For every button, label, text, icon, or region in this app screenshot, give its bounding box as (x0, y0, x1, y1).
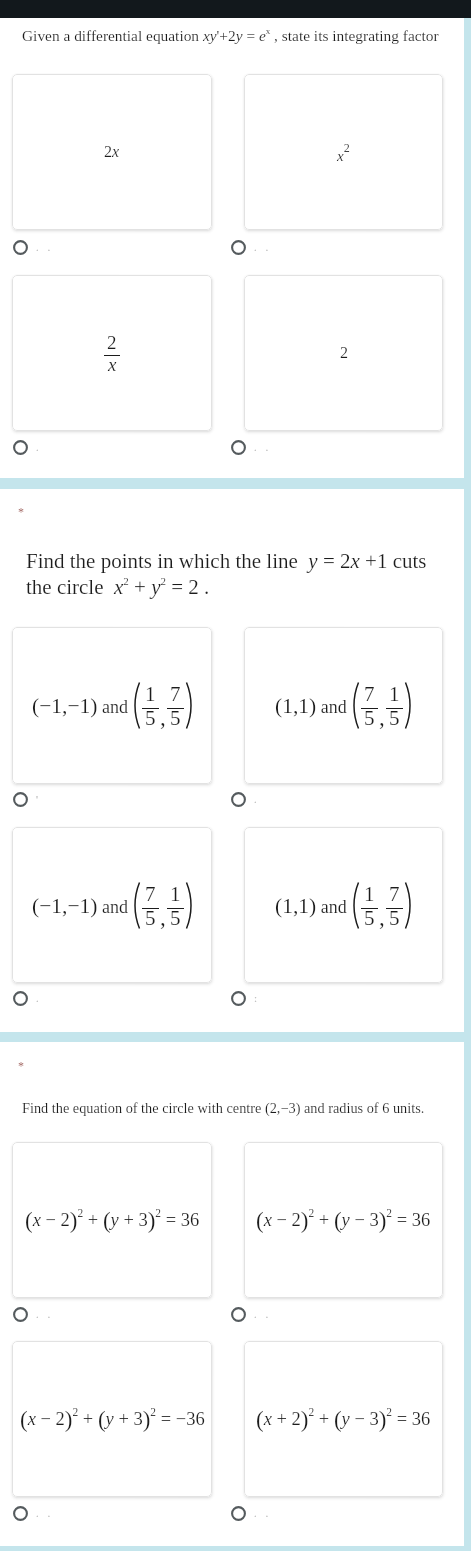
staticText: x (108, 354, 117, 375)
staticText: 1 (170, 882, 181, 905)
staticText: 5 (145, 706, 156, 729)
staticText: 5 (389, 706, 400, 729)
staticText: , (160, 704, 166, 730)
button[interactable]: (x − 2)2 + (y + 3)2 = −36 (12, 1341, 212, 1497)
staticText: . . (36, 1507, 54, 1519)
staticText: (−1,−1) and (32, 894, 133, 918)
staticText: Given a differential equation xy'+2y = e… (22, 26, 439, 44)
staticText: 7 (145, 882, 156, 905)
staticText: . . (254, 1507, 272, 1519)
button[interactable]: (x + 2)2 + (y − 3)2 = 36 (244, 1341, 443, 1497)
staticText: Find the points in which the line y = 2x… (26, 549, 427, 572)
staticText: 1 (364, 882, 375, 905)
button[interactable]: Select answer option (13, 1502, 123, 1524)
button[interactable]: (1,1) and (244, 627, 443, 784)
button[interactable]: Select answer option (231, 436, 341, 458)
staticText: (x + 2)2 + (y − 3)2 = 36 (256, 1406, 431, 1432)
staticText: . . (254, 241, 272, 253)
button[interactable]: x2 (244, 74, 443, 230)
staticText: 5 (389, 906, 400, 929)
button[interactable]: 2x (12, 74, 212, 230)
staticText: the circle x2 + y2 = 2 . (26, 575, 210, 598)
button[interactable]: (1,1) and (244, 827, 443, 983)
staticText: ' (36, 793, 41, 805)
staticText: . . (36, 241, 54, 253)
button[interactable]: Select answer option (13, 236, 123, 258)
staticText: , (379, 704, 385, 730)
staticText: 5 (145, 906, 156, 929)
staticText: : (254, 992, 261, 1004)
staticText: 1 (389, 682, 400, 705)
staticText: 1 (145, 682, 156, 705)
button[interactable]: Select answer option (13, 436, 123, 458)
staticText: 5 (170, 906, 181, 929)
staticText: . . (254, 441, 272, 453)
button[interactable]: (−1,−1) and (12, 827, 212, 983)
button[interactable]: (x − 2)2 + (y − 3)2 = 36 (244, 1142, 443, 1298)
staticText: . (36, 992, 42, 1004)
button[interactable]: Select answer option (231, 1303, 341, 1325)
staticText: 2 (107, 332, 117, 353)
button[interactable]: Select answer option (231, 987, 341, 1009)
staticText: (1,1) and (275, 694, 352, 718)
staticText: . . (254, 1308, 272, 1320)
staticText: * (18, 1059, 24, 1072)
staticText: 7 (389, 882, 400, 905)
button[interactable]: Select answer option (13, 987, 123, 1009)
staticText: . (36, 441, 42, 453)
staticText: (x − 2)2 + (y + 3)2 = −36 (20, 1406, 205, 1432)
staticText: x2 (337, 141, 350, 164)
staticText: 5 (170, 706, 181, 729)
staticText: 2 (340, 344, 348, 362)
button[interactable]: Select answer option (231, 788, 341, 810)
staticText: 5 (364, 706, 375, 729)
staticText: Find the equation of the circle with cen… (22, 1100, 425, 1116)
staticText: 7 (364, 682, 375, 705)
button[interactable]: (−1,−1) and (12, 627, 212, 784)
staticText: . (254, 793, 260, 805)
staticText: , (379, 904, 385, 930)
button[interactable]: 2 (244, 275, 443, 431)
staticText: (1,1) and (275, 894, 352, 918)
staticText: 7 (170, 682, 181, 705)
staticText: (x − 2)2 + (y − 3)2 = 36 (256, 1207, 431, 1233)
staticText: 5 (364, 906, 375, 929)
button[interactable]: Select answer option (13, 788, 123, 810)
staticText: * (18, 505, 24, 518)
button[interactable]: 2 (12, 275, 212, 431)
button[interactable]: Select answer option (13, 1303, 123, 1325)
button[interactable]: Select answer option (231, 236, 341, 258)
staticText: (−1,−1) and (32, 694, 133, 718)
staticText: , (160, 904, 166, 930)
staticText: . . (36, 1308, 54, 1320)
staticText: (x − 2)2 + (y + 3)2 = 36 (25, 1207, 200, 1233)
button[interactable]: Select answer option (231, 1502, 341, 1524)
staticText: 2x (104, 143, 120, 161)
button[interactable]: (x − 2)2 + (y + 3)2 = 36 (12, 1142, 212, 1298)
